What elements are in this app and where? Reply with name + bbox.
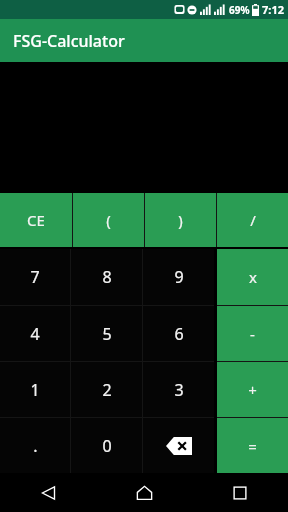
staticText: 1 [30,379,40,401]
staticText: ) [178,210,183,230]
button[interactable]: 7 [0,249,70,305]
button[interactable]: 9 [143,249,214,305]
button[interactable]: = [217,418,288,473]
button[interactable]: - [217,306,288,361]
button[interactable]: Back [0,473,96,512]
button[interactable]: 5 [71,306,142,361]
staticText: / [250,210,256,230]
staticText: 69% [229,3,250,17]
button[interactable]: CE [0,193,72,247]
staticText: . [33,435,38,457]
staticText: 7 [30,266,40,288]
button[interactable]: . [0,418,70,473]
staticText: 4 [30,323,40,345]
staticText: + [248,380,257,400]
button[interactable]: + [217,362,288,417]
staticText: 6 [174,323,184,345]
button[interactable]: 4 [0,306,70,361]
button[interactable]: ) [145,193,216,247]
button[interactable]: Home [96,473,192,512]
button[interactable]: ( [73,193,144,247]
staticText: ( [106,210,111,230]
staticText: 8 [102,266,112,288]
staticText: 3 [174,379,184,401]
staticText: 7:12 [262,2,284,17]
button[interactable]: 1 [0,362,70,417]
button[interactable]: 3 [143,362,214,417]
staticText: 2 [102,379,112,401]
staticText: 0 [102,435,112,457]
button[interactable]: / [217,193,288,247]
button[interactable]: Recent apps [192,473,288,512]
button[interactable]: 2 [71,362,142,417]
staticText: 9 [174,266,184,288]
staticText: CE [27,210,45,230]
button[interactable]: 0 [71,418,142,473]
button[interactable]: Backspace [143,418,214,473]
staticText: - [250,324,255,344]
staticText: FSG-Calculator [13,30,125,52]
staticText: = [248,436,257,456]
staticText: x [249,267,257,287]
button[interactable]: 8 [71,249,142,305]
button[interactable]: 6 [143,306,214,361]
staticText: 5 [102,323,112,345]
button[interactable]: x [217,249,288,305]
